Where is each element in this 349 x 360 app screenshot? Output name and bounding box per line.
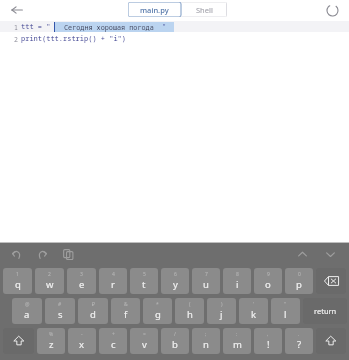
button[interactable]: % — [37, 328, 65, 354]
button[interactable]: * — [143, 298, 172, 324]
button[interactable]: & — [111, 298, 140, 324]
staticText: main.py — [140, 5, 169, 15]
staticText: n — [203, 338, 209, 351]
staticText: ; — [205, 331, 207, 338]
staticText: 1 — [16, 271, 19, 278]
button[interactable]: 5 — [130, 268, 158, 294]
staticText: ₽ — [92, 301, 95, 308]
button[interactable]: = — [130, 328, 158, 354]
staticText: # — [58, 301, 62, 308]
button[interactable]: 9 — [254, 268, 282, 294]
button[interactable]: 3 — [67, 268, 96, 294]
staticText: ' — [253, 301, 255, 308]
staticText: % — [49, 331, 54, 338]
button[interactable]: 1 — [0, 19, 349, 242]
button[interactable]: ) — [207, 298, 236, 324]
staticText: return — [314, 306, 337, 316]
button[interactable]: , — [254, 328, 282, 354]
staticText: ttt = " — [21, 22, 51, 32]
staticText: a — [24, 308, 30, 321]
button[interactable]: return — [303, 298, 347, 324]
button[interactable]: 8 — [223, 268, 251, 294]
staticText: v — [142, 338, 147, 351]
staticText: ? — [297, 338, 302, 351]
button[interactable]: Move up — [293, 245, 311, 263]
staticText: 0 — [298, 271, 301, 278]
staticText: " — [162, 22, 167, 32]
button[interactable]: 6 — [161, 268, 189, 294]
staticText: & — [124, 301, 128, 308]
staticText: s — [58, 308, 63, 321]
button[interactable]: ₽ — [78, 298, 108, 324]
staticText: x — [79, 338, 85, 351]
button[interactable]: Backspace — [316, 268, 346, 294]
button[interactable]: # — [45, 298, 75, 324]
staticText: + — [112, 331, 115, 338]
button[interactable]: 1 — [3, 268, 32, 294]
staticText: o — [265, 278, 271, 291]
button[interactable]: 0 — [285, 268, 313, 294]
staticText: m — [233, 338, 242, 351]
button[interactable]: ' — [239, 298, 268, 324]
staticText: . — [298, 331, 300, 338]
staticText: e — [79, 278, 85, 291]
staticText: / — [174, 331, 176, 338]
button[interactable]: Shell — [181, 2, 227, 17]
staticText: h — [187, 308, 193, 321]
staticText: Shell — [196, 5, 213, 15]
button[interactable]: Shift — [3, 328, 34, 354]
button[interactable]: ; — [192, 328, 220, 354]
staticText: print(ttt.rstrip() + "i") — [21, 34, 126, 44]
staticText: 8 — [236, 271, 239, 278]
staticText: ! — [267, 338, 270, 351]
button[interactable]: / — [161, 328, 189, 354]
button[interactable]: : — [223, 328, 251, 354]
staticText: 9 — [267, 271, 270, 278]
staticText: 3 — [80, 271, 83, 278]
staticText: 2 — [0, 35, 18, 44]
button[interactable]: Copy — [59, 245, 77, 263]
staticText: 2 — [48, 271, 51, 278]
button[interactable]: main.py — [128, 2, 181, 17]
staticText: ) — [221, 301, 223, 308]
staticText: 7 — [205, 271, 208, 278]
button[interactable]: 4 — [99, 268, 127, 294]
staticText: p — [296, 278, 302, 291]
staticText: ( — [189, 301, 191, 308]
button[interactable]: " — [271, 298, 300, 324]
staticText: q — [15, 278, 21, 291]
staticText: : — [236, 331, 238, 338]
button[interactable]: @ — [12, 298, 42, 324]
button[interactable]: Back — [8, 1, 26, 19]
button[interactable]: . — [285, 328, 313, 354]
staticText: " — [284, 301, 287, 308]
staticText: , — [267, 331, 269, 338]
staticText: * — [156, 301, 159, 308]
staticText: 6 — [174, 271, 177, 278]
staticText: r — [111, 278, 115, 291]
staticText: @ — [25, 301, 30, 308]
staticText: f — [124, 308, 128, 321]
staticText: j — [220, 308, 223, 321]
button[interactable]: Undo — [7, 245, 25, 263]
staticText: 5 — [143, 271, 146, 278]
staticText: c — [111, 338, 116, 351]
button[interactable]: Toggle dark mode — [323, 1, 341, 19]
button[interactable]: Move down — [321, 245, 339, 263]
button[interactable]: Shift — [316, 328, 346, 354]
staticText: 4 — [112, 271, 115, 278]
button[interactable]: ( — [175, 298, 204, 324]
button[interactable]: Redo — [33, 245, 51, 263]
staticText: k — [251, 308, 257, 321]
button[interactable]: + — [99, 328, 127, 354]
staticText: b — [172, 338, 178, 351]
staticText: w — [46, 278, 54, 291]
button[interactable]: 7 — [192, 268, 220, 294]
button[interactable]: - — [68, 328, 96, 354]
button[interactable]: 2 — [35, 268, 64, 294]
staticText: 1 — [0, 23, 18, 32]
staticText: d — [90, 308, 96, 321]
staticText: l — [284, 308, 287, 321]
staticText: g — [155, 308, 161, 321]
staticText: i — [236, 278, 239, 291]
